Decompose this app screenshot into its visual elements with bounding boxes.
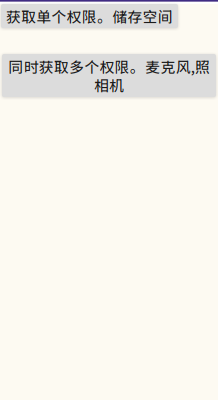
button[interactable]: 同时获取多个权限。麦克风,照相机	[2, 54, 216, 97]
button[interactable]: 获取单个权限。储存空间	[1, 4, 178, 28]
staticText: 获取单个权限。储存空间	[6, 5, 173, 27]
staticText: 同时获取多个权限。麦克风,照相机	[8, 57, 210, 94]
